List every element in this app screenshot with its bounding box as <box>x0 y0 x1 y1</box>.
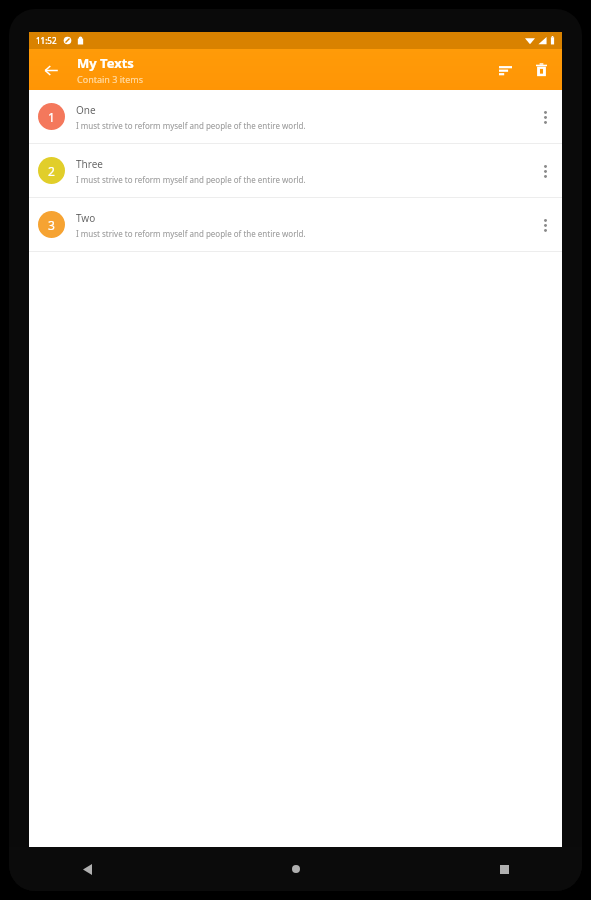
button[interactable]: 2 <box>29 144 562 197</box>
staticText: My Texts <box>77 54 134 72</box>
staticText: Contain 3 items <box>77 73 144 85</box>
button[interactable]: More options <box>532 205 558 245</box>
button[interactable]: Recent apps <box>486 851 522 887</box>
staticText: I must strive to reform myself and peopl… <box>76 120 306 131</box>
staticText: One <box>76 103 96 117</box>
button[interactable]: More options <box>532 97 558 137</box>
button[interactable]: Sort <box>490 55 520 85</box>
staticText: Two <box>76 211 96 225</box>
staticText: 3 <box>48 217 55 233</box>
staticText: I must strive to reform myself and peopl… <box>76 174 306 185</box>
staticText: I must strive to reform myself and peopl… <box>76 228 306 239</box>
staticText: 1 <box>48 109 55 125</box>
button[interactable]: 1 <box>29 90 562 143</box>
staticText: 11:52 <box>36 35 57 46</box>
button[interactable]: More options <box>532 151 558 191</box>
button[interactable]: Home <box>278 851 314 887</box>
button[interactable]: 3 <box>29 198 562 251</box>
staticText: 2 <box>48 163 55 179</box>
button[interactable]: Back <box>35 54 67 86</box>
staticText: Three <box>76 157 103 171</box>
button[interactable]: Delete <box>526 55 556 85</box>
button[interactable]: Back <box>69 851 105 887</box>
